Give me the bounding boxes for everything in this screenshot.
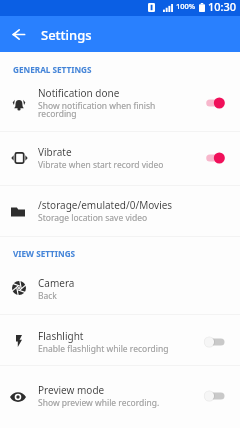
staticText: Camera xyxy=(38,276,75,290)
staticText: Enable flashlight while recording xyxy=(38,343,169,355)
staticText: Preview mode xyxy=(38,383,105,397)
button[interactable] xyxy=(0,133,240,183)
button[interactable] xyxy=(0,371,240,421)
button[interactable] xyxy=(0,186,240,236)
button[interactable]: Back xyxy=(4,20,33,49)
staticText: Show notification when finish recording xyxy=(38,100,194,120)
button[interactable]: Switch off xyxy=(202,331,230,353)
button[interactable]: Switch on xyxy=(202,92,230,114)
staticText: Vibrate when start record video xyxy=(38,159,164,171)
button[interactable] xyxy=(0,264,240,314)
staticText: VIEW SETTINGS xyxy=(13,248,76,259)
button[interactable]: Switch off xyxy=(202,385,230,407)
staticText: Settings xyxy=(41,26,92,44)
staticText: GENERAL SETTINGS xyxy=(13,64,92,75)
button[interactable] xyxy=(0,317,240,367)
staticText: Vibrate xyxy=(38,145,72,159)
staticText: Notification done xyxy=(38,86,120,100)
staticText: Flashlight xyxy=(38,329,84,343)
button[interactable]: Switch on xyxy=(202,147,230,169)
button[interactable] xyxy=(0,78,240,128)
staticText: 10:30 xyxy=(208,0,237,14)
staticText: Back xyxy=(38,290,57,302)
staticText: Storage location save video xyxy=(38,212,148,224)
staticText: 100% xyxy=(176,1,196,11)
staticText: /storage/emulated/0/Movies xyxy=(38,198,173,212)
staticText: Show preview while recording. xyxy=(38,397,160,409)
